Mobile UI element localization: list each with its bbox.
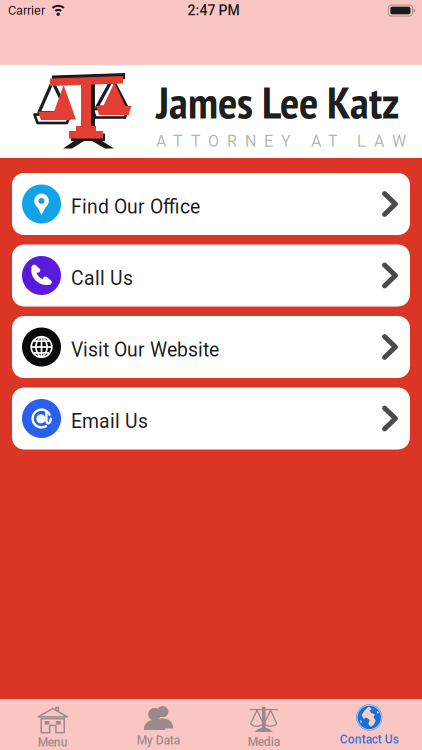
button[interactable]: Media (211, 696, 316, 750)
button[interactable]: Email Us (12, 387, 410, 449)
staticText: Menu (38, 735, 68, 750)
staticText: Visit Our Website (71, 339, 219, 361)
button[interactable]: Menu (0, 695, 105, 750)
staticText: My Data (137, 733, 180, 748)
button[interactable]: Visit Our Website (12, 316, 410, 378)
staticText: Email Us (71, 410, 148, 433)
staticText: ATTORNEY AT LAW (156, 132, 406, 151)
staticText: James Lee Katz (156, 72, 399, 131)
button[interactable]: My Data (105, 697, 211, 750)
staticText: Media (248, 735, 280, 749)
staticText: Find Our Office (71, 196, 200, 218)
staticText: Call Us (71, 267, 133, 290)
staticText: Carrier (8, 3, 45, 18)
button[interactable]: Find Our Office (12, 173, 410, 235)
button[interactable]: Call Us (12, 244, 410, 306)
button[interactable]: Contact Us (316, 698, 422, 750)
staticText: Contact Us (340, 732, 399, 747)
staticText: 2:47 PM (187, 2, 239, 19)
